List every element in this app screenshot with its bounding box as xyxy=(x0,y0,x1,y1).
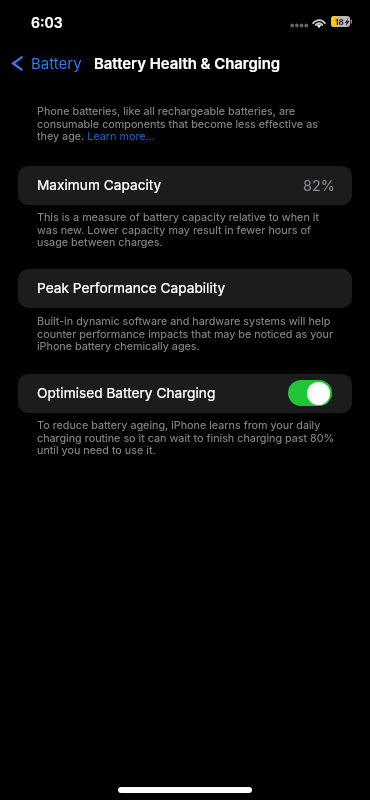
button[interactable]: Maximum Capacity xyxy=(18,166,352,205)
staticText: 18 xyxy=(335,17,344,27)
button[interactable]: Battery xyxy=(0,52,88,74)
staticText: Battery xyxy=(31,54,82,72)
button[interactable]: Learn more about battery health xyxy=(84,129,156,143)
staticText: 82% xyxy=(303,177,335,194)
button[interactable]: Peak Performance Capability xyxy=(18,269,352,308)
button[interactable]: Optimised Battery Charging toggle xyxy=(288,380,332,406)
staticText: Battery Health & Charging xyxy=(94,55,281,73)
staticText: Built-in dynamic software and hardware s… xyxy=(37,315,336,352)
staticText: Maximum Capacity xyxy=(37,177,162,194)
staticText: 6:03 xyxy=(31,14,63,31)
staticText: Peak Performance Capability xyxy=(37,280,226,297)
staticText: This is a measure of battery capacity re… xyxy=(37,211,336,248)
staticText: To reduce battery ageing, iPhone learns … xyxy=(37,419,336,456)
button[interactable]: Optimised Battery Charging xyxy=(18,374,352,413)
staticText: Phone batteries, like all rechargeable b… xyxy=(37,105,336,142)
staticText: Optimised Battery Charging xyxy=(37,385,216,402)
